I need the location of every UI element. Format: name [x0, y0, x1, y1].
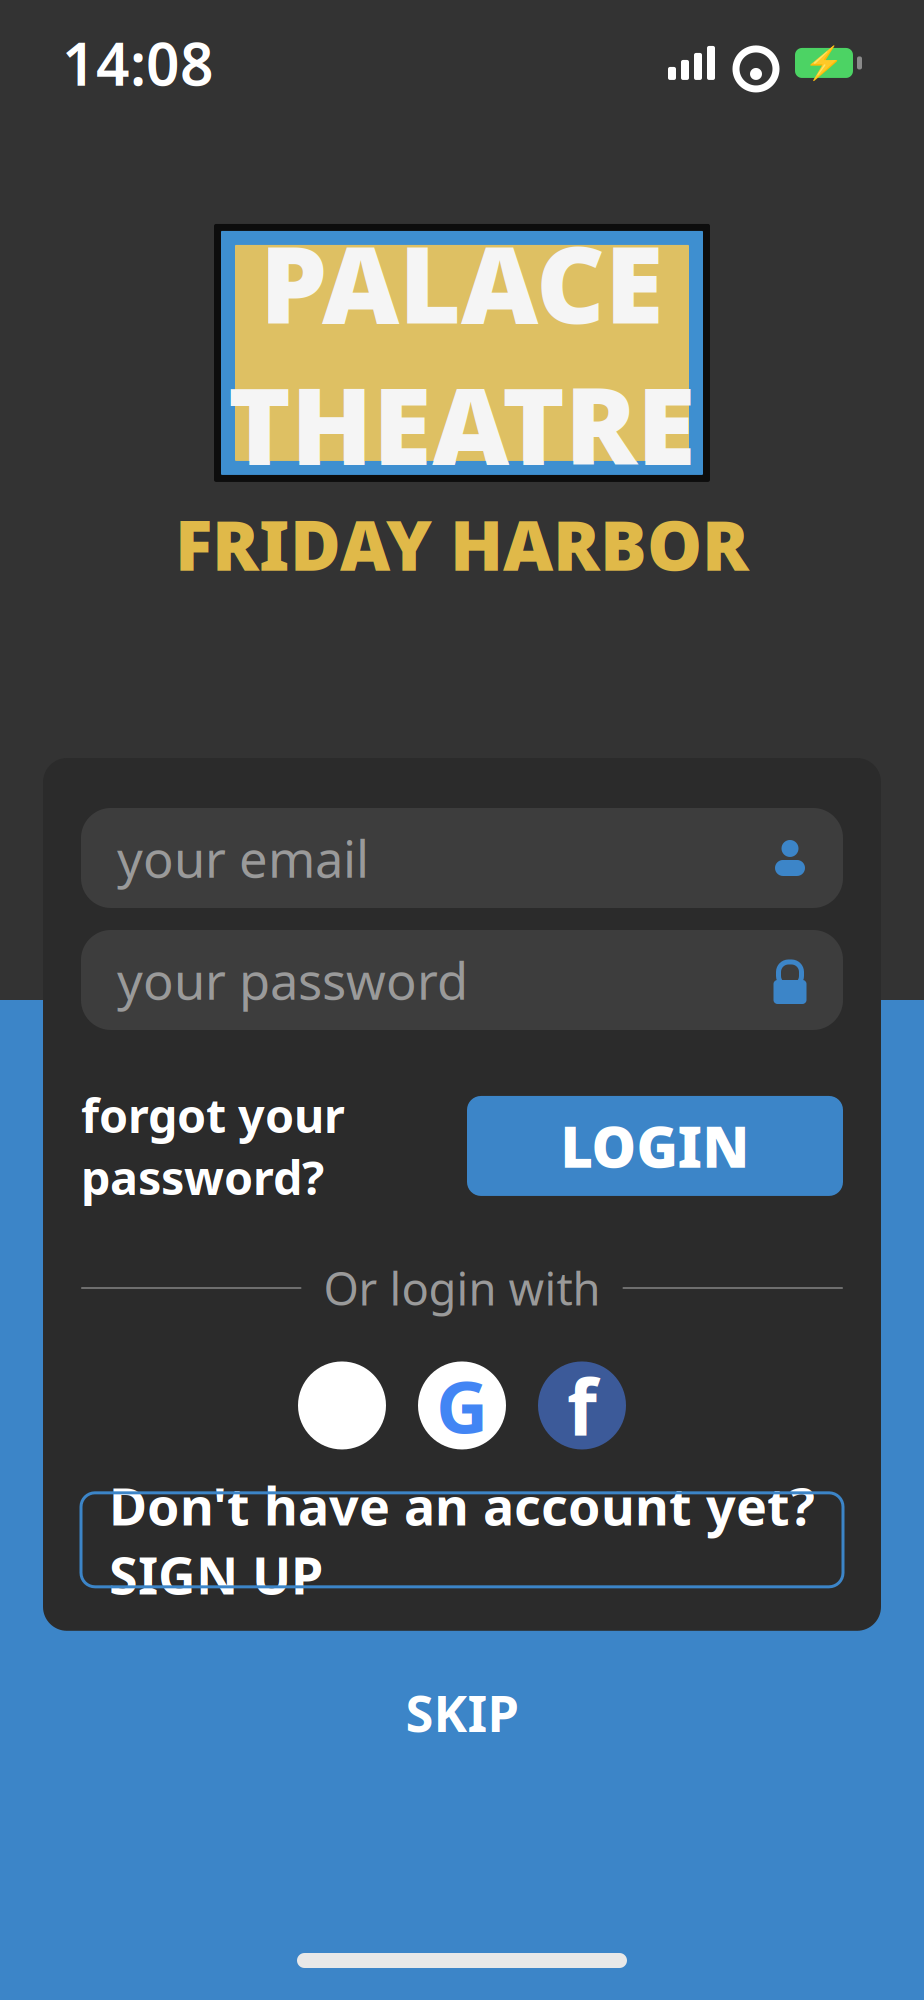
staticText: PALACE	[260, 211, 664, 353]
staticText: LOGIN	[560, 1109, 749, 1183]
staticText: G	[436, 1358, 488, 1453]
staticText: f	[567, 1354, 597, 1457]
staticText: THEATRE	[228, 353, 696, 494]
staticText: SKIP	[405, 1679, 518, 1746]
staticText: Don't have an account yet? SIGN UP	[109, 1471, 815, 1609]
staticText: your password	[117, 946, 468, 1014]
button[interactable]: Sign in with Google	[418, 1358, 506, 1453]
button[interactable]: forgot your password?	[81, 1070, 345, 1222]
button[interactable]: Sign in with Facebook	[538, 1354, 626, 1457]
staticText: ⚡	[804, 45, 844, 81]
button[interactable]: LOGIN	[467, 1096, 843, 1196]
button[interactable]: Sign in with Apple	[298, 1359, 386, 1451]
staticText: 14:08	[62, 24, 214, 102]
button[interactable]: Don't have an account yet? SIGN UP	[81, 1493, 843, 1587]
staticText: your email	[117, 824, 369, 892]
staticText: forgot your password?	[81, 1084, 345, 1208]
staticText: Or login with	[323, 1258, 600, 1318]
button[interactable]: SKIP	[355, 1659, 568, 1766]
staticText: FRIDAY HARBOR	[175, 498, 749, 590]
